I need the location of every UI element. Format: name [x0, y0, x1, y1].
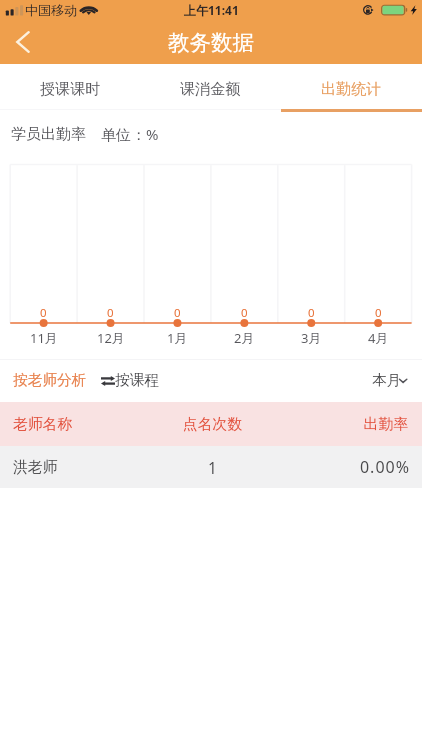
staticText: 0: [308, 305, 315, 321]
staticText: 按课程: [115, 371, 160, 390]
staticText: 教务数据: [168, 29, 254, 56]
button[interactable]: Back: [0, 20, 46, 64]
button[interactable]: 授课课时: [0, 64, 140, 112]
staticText: 2月: [234, 329, 255, 347]
other: Rotation lock, battery charging: [0, 0, 422, 20]
staticText: 0: [375, 305, 382, 321]
staticText: 学员出勤率: [11, 125, 86, 144]
staticText: 12月: [97, 329, 125, 347]
staticText: 洪老师: [13, 458, 140, 477]
staticText: 老师名称: [13, 415, 140, 434]
button[interactable]: 课消金额: [140, 64, 281, 112]
staticText: 出勤率: [281, 415, 408, 434]
staticText: 本月: [372, 371, 402, 389]
staticText: 中国移动: [25, 2, 78, 19]
staticText: 11月: [30, 329, 58, 347]
staticText: 1月: [167, 329, 188, 347]
button[interactable]: 按课程: [101, 371, 160, 390]
staticText: 课消金额: [180, 79, 241, 98]
staticText: 授课课时: [40, 79, 101, 98]
staticText: 0: [174, 305, 181, 321]
staticText: 0: [40, 305, 47, 321]
button[interactable]: 本月: [372, 371, 412, 389]
staticText: 1: [142, 457, 283, 478]
staticText: 4月: [368, 329, 389, 347]
button[interactable]: 按老师分析: [13, 371, 87, 390]
staticText: 单位：%: [101, 124, 159, 144]
staticText: 点名次数: [142, 415, 283, 434]
staticText: 0: [107, 305, 114, 321]
staticText: 3月: [301, 329, 322, 347]
staticText: 0.00%: [281, 456, 410, 478]
button[interactable]: 洪老师: [0, 446, 422, 488]
staticText: 按老师分析: [13, 371, 87, 390]
button[interactable]: 出勤统计: [281, 64, 422, 112]
staticText: 出勤统计: [321, 79, 382, 98]
staticText: 上午11:41: [184, 2, 239, 18]
staticText: 0: [241, 305, 248, 321]
